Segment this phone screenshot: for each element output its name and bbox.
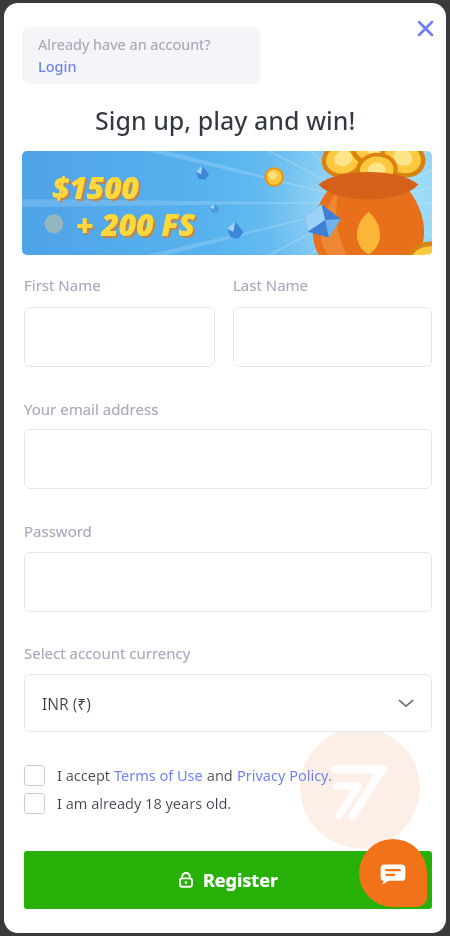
staticText: Login	[38, 56, 77, 76]
staticText: $1500	[54, 169, 141, 210]
staticText: Your email address	[24, 399, 159, 419]
button[interactable]: Last Name	[233, 307, 432, 367]
staticText: I am already 18 years old.	[57, 793, 232, 813]
staticText: + 200 FS	[78, 206, 197, 247]
staticText: Password	[24, 521, 92, 541]
button[interactable]: Open chat support	[359, 839, 427, 907]
button[interactable]: Password	[24, 552, 432, 612]
staticText: I accept	[57, 765, 114, 785]
staticText: and	[203, 765, 237, 785]
staticText: + 200 FS	[76, 204, 195, 245]
button[interactable]: Already have an account?	[22, 27, 260, 84]
staticText: Already have an account?	[38, 34, 211, 54]
button[interactable]: Register	[24, 851, 432, 909]
button[interactable]: Welcome bonus offer	[22, 151, 432, 255]
button[interactable]: First Name	[24, 307, 215, 367]
staticText: Sign up, play and win!	[95, 103, 356, 137]
button[interactable]: I am already 18 years old.	[24, 789, 232, 817]
staticText: First Name	[24, 275, 101, 295]
staticText: Privacy Policy.	[237, 765, 332, 785]
staticText: Terms of Use	[114, 765, 203, 785]
staticText: $1500	[52, 167, 139, 208]
button[interactable]: Close	[404, 7, 446, 49]
button[interactable]: I accept	[24, 761, 332, 789]
staticText: Register	[203, 868, 278, 893]
button[interactable]: Your email address	[24, 429, 432, 489]
button[interactable]: INR (₹)	[24, 674, 432, 732]
staticText: Last Name	[233, 275, 309, 295]
staticText: INR (₹)	[42, 693, 91, 714]
staticText: Select account currency	[24, 643, 191, 663]
